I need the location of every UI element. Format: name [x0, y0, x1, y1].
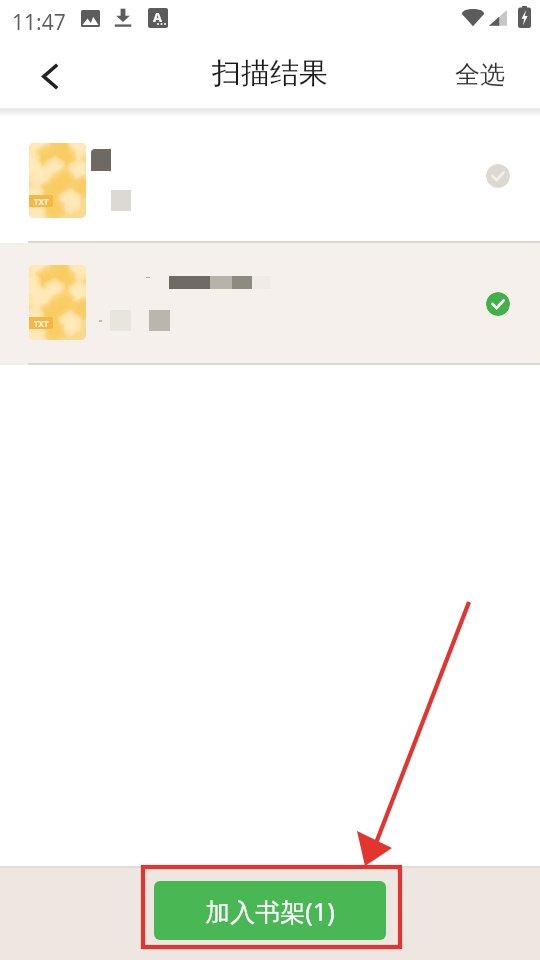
button[interactable]: 全选: [455, 44, 505, 108]
button[interactable]: Selected: [486, 292, 510, 316]
button[interactable]: Select: [486, 164, 510, 188]
staticText: TXT: [34, 318, 49, 329]
staticText: TXT: [34, 196, 49, 207]
staticText: 11:47: [12, 8, 66, 37]
button[interactable]: 加入书架(1): [154, 881, 386, 940]
button[interactable]: TXT: [0, 109, 540, 243]
staticText: 加入书架(1): [205, 894, 335, 928]
button[interactable]: TXT: [0, 243, 540, 365]
staticText: 全选: [455, 59, 505, 90]
button[interactable]: Back: [0, 44, 86, 108]
staticText: A: [153, 8, 162, 26]
staticText: 扫描结果: [212, 55, 328, 92]
